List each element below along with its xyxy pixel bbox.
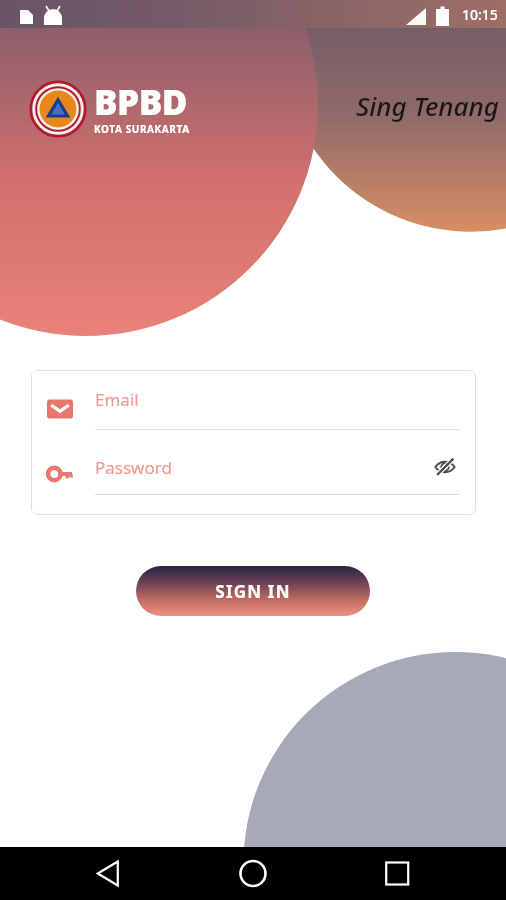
button[interactable]: SIGN IN	[136, 566, 370, 616]
button[interactable]: Show password	[430, 452, 460, 482]
staticText: SIGN IN	[215, 580, 291, 603]
staticText: BPBD	[94, 78, 187, 126]
staticText: Sing Tenang	[356, 88, 499, 123]
button[interactable]: Email	[47, 382, 460, 430]
button[interactable]: Password	[47, 452, 460, 495]
staticText: KOTA SURAKARTA	[94, 122, 190, 136]
staticText: Password	[95, 456, 430, 479]
staticText: Email	[95, 388, 139, 411]
staticText: 10:15	[462, 5, 498, 24]
